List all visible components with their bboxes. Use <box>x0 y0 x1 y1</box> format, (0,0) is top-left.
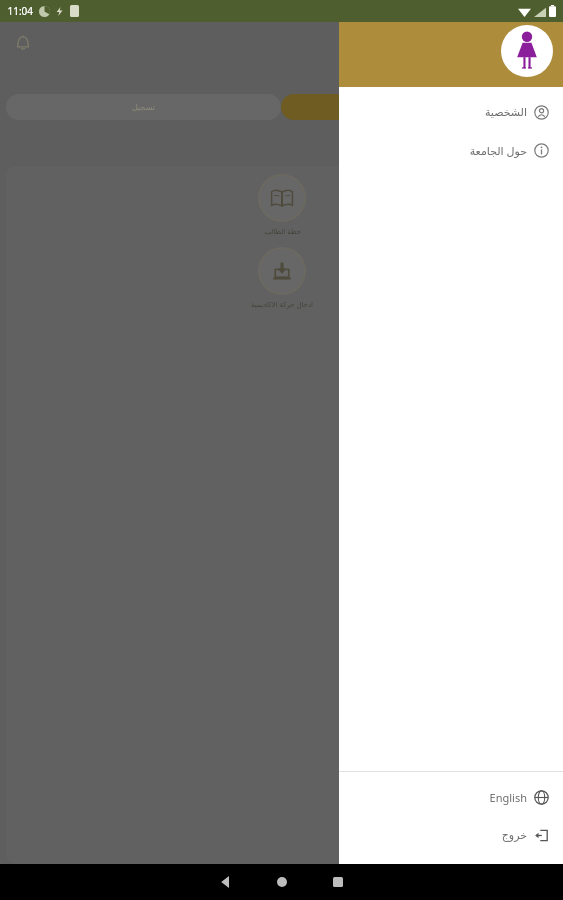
staticText: رنا عبد المحسن الشقحاء <box>472 71 533 79</box>
button[interactable]: Home <box>254 864 310 900</box>
button[interactable]: خروج <box>339 816 563 854</box>
staticText: تسجيل <box>132 103 155 112</box>
button[interactable]: Back <box>198 864 254 900</box>
staticText: English <box>489 790 527 805</box>
button[interactable]: الاكاديمي <box>281 94 557 120</box>
staticText: خروج <box>501 829 527 842</box>
staticText: 11:04 <box>7 4 33 18</box>
button[interactable]: ادخال حركة الاكاديمية <box>227 247 337 310</box>
button[interactable]: رنا عبد المحسن الشقحاء <box>472 26 533 79</box>
button[interactable]: Profile picture <box>501 25 553 77</box>
staticText: جامعة أم القرى <box>494 144 539 154</box>
button[interactable]: English <box>339 778 563 816</box>
button[interactable]: Notifications <box>10 30 36 56</box>
staticText: الشخصية <box>484 106 527 119</box>
staticText: حول الجامعة <box>469 143 527 158</box>
button[interactable]: Recent apps <box>310 864 366 900</box>
staticText: خطة الطالب <box>264 227 301 237</box>
button[interactable]: خطة الطالب <box>227 174 337 237</box>
staticText: ادخال حركة الاكاديمية <box>251 300 313 310</box>
button[interactable]: الشخصية <box>339 93 563 131</box>
button[interactable]: حول الجامعة <box>339 131 563 169</box>
